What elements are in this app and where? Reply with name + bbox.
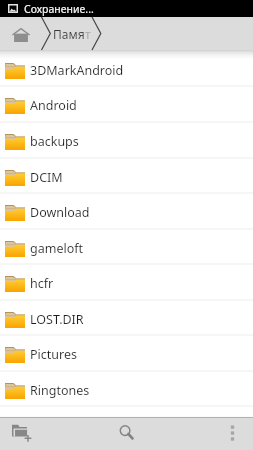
button[interactable]: Android bbox=[0, 86, 253, 122]
staticText: DCIM bbox=[30, 169, 63, 186]
staticText: Android bbox=[30, 97, 77, 114]
staticText: hcfr bbox=[30, 275, 54, 292]
staticText: 3DMarkAndroid bbox=[30, 62, 124, 79]
button[interactable]: gameloft bbox=[0, 229, 253, 265]
staticText: LOST.DIR bbox=[30, 311, 84, 328]
button[interactable]: Памя bbox=[53, 17, 91, 50]
staticText: Ringtones bbox=[30, 382, 90, 399]
button[interactable]: hcfr bbox=[0, 264, 253, 300]
staticText: т bbox=[85, 26, 91, 42]
button[interactable]: Pictures bbox=[0, 335, 253, 371]
button[interactable]: More options bbox=[217, 418, 247, 450]
staticText: Download bbox=[30, 204, 90, 221]
button[interactable]: DCIM bbox=[0, 158, 253, 194]
staticText: backups bbox=[30, 133, 79, 150]
staticText: Памя bbox=[53, 26, 85, 42]
button[interactable]: Search bbox=[112, 418, 142, 450]
button[interactable]: 3DMarkAndroid bbox=[0, 51, 253, 87]
staticText: Сохранение... bbox=[24, 2, 94, 16]
button[interactable]: New folder bbox=[6, 418, 36, 450]
staticText: Pictures bbox=[30, 346, 77, 363]
button[interactable]: Home bbox=[0, 17, 41, 50]
button[interactable]: Ringtones bbox=[0, 371, 253, 407]
button[interactable]: backups bbox=[0, 122, 253, 158]
button[interactable]: Download bbox=[0, 193, 253, 229]
staticText: gameloft bbox=[30, 240, 84, 257]
button[interactable]: LOST.DIR bbox=[0, 300, 253, 336]
